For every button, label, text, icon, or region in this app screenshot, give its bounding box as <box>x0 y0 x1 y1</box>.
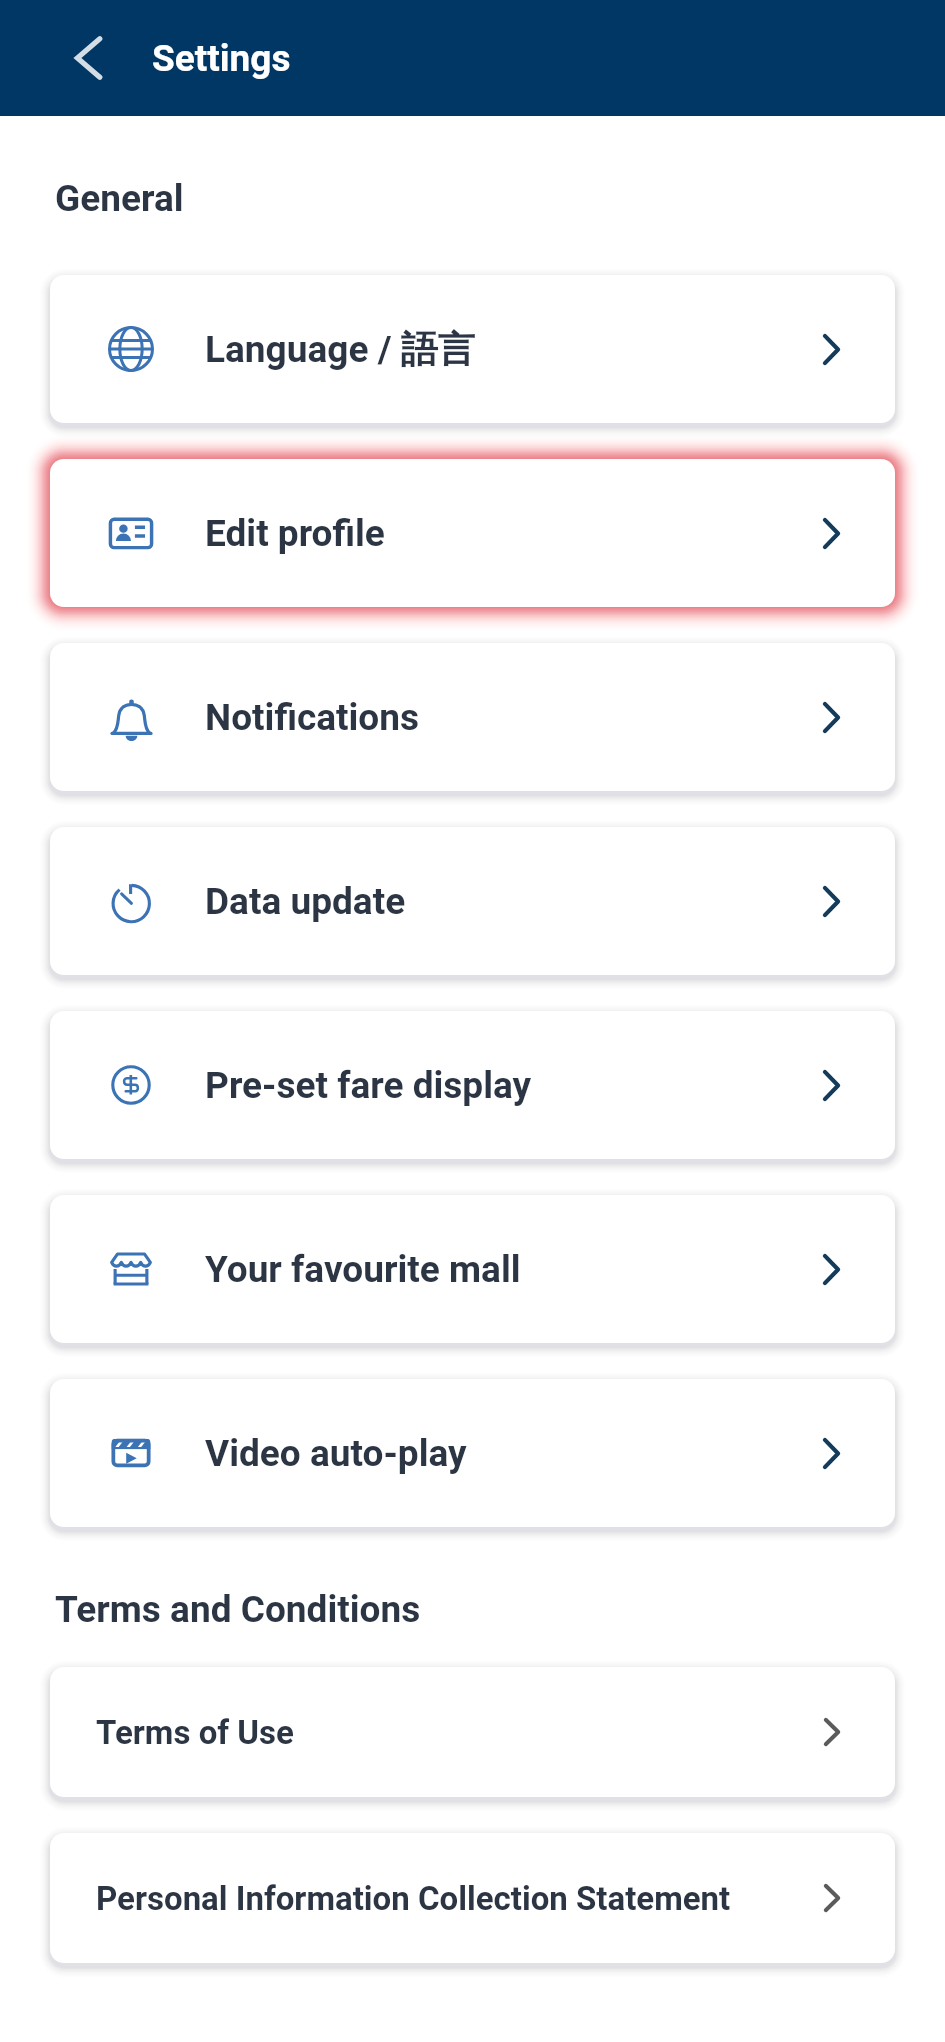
button[interactable]: Edit profile <box>50 459 895 607</box>
button[interactable]: Video auto-play <box>50 1379 895 1527</box>
button[interactable]: Back <box>62 30 116 86</box>
staticText: Terms of Use <box>96 1713 294 1752</box>
staticText: Edit profile <box>205 512 385 555</box>
staticText: Personal Information Collection Statemen… <box>96 1879 731 1918</box>
button[interactable]: Pre-set fare display <box>50 1011 895 1159</box>
staticText: Video auto-play <box>205 1432 467 1475</box>
staticText: Language / 語言 <box>205 326 475 373</box>
staticText: Data update <box>205 880 406 923</box>
button[interactable]: Data update <box>50 827 895 975</box>
staticText: Your favourite mall <box>205 1248 521 1291</box>
staticText: Terms and Conditions <box>55 1588 421 1631</box>
staticText: Pre-set fare display <box>205 1064 532 1107</box>
button[interactable]: Language / 語言 <box>50 275 895 423</box>
button[interactable]: Your favourite mall <box>50 1195 895 1343</box>
staticText: Settings <box>152 37 291 80</box>
button[interactable]: Terms of Use <box>50 1667 895 1797</box>
button[interactable]: Personal Information Collection Statemen… <box>50 1833 895 1963</box>
staticText: General <box>55 177 184 220</box>
button[interactable]: Notifications <box>50 643 895 791</box>
staticText: Notifications <box>205 696 420 739</box>
